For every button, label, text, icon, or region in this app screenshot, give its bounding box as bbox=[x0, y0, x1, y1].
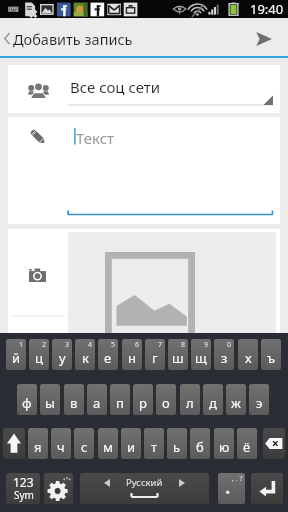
button[interactable]: ч bbox=[51, 428, 71, 459]
button[interactable]: Shift bbox=[3, 428, 25, 459]
button[interactable]: я bbox=[28, 428, 48, 459]
button[interactable]: щ bbox=[191, 339, 211, 370]
button[interactable]: Period bbox=[218, 473, 245, 504]
button[interactable]: й bbox=[6, 339, 26, 370]
staticText: 6 bbox=[135, 340, 140, 350]
button[interactable]: а bbox=[87, 384, 107, 415]
staticText: ш bbox=[172, 349, 184, 367]
button[interactable]: ь bbox=[167, 428, 187, 459]
staticText: 7 bbox=[158, 340, 163, 350]
button[interactable]: е bbox=[98, 339, 118, 370]
button[interactable]: ф bbox=[17, 384, 37, 415]
staticText: Текст bbox=[76, 128, 115, 148]
staticText: 19:40 bbox=[250, 0, 284, 18]
staticText: Все соц сети bbox=[70, 77, 161, 97]
button[interactable]: с bbox=[74, 428, 94, 459]
staticText: Sym bbox=[14, 488, 34, 502]
staticText: и bbox=[127, 438, 136, 456]
staticText: 2 bbox=[42, 340, 47, 350]
staticText: о bbox=[162, 394, 170, 412]
button[interactable]: Send bbox=[238, 18, 288, 58]
button[interactable]: т bbox=[144, 428, 164, 459]
staticText: , . ? bbox=[232, 474, 243, 484]
staticText: ъ bbox=[267, 349, 276, 367]
button[interactable]: н bbox=[122, 339, 142, 370]
button[interactable]: м bbox=[98, 428, 118, 459]
button[interactable]: и bbox=[121, 428, 141, 459]
button[interactable]: п bbox=[110, 384, 130, 415]
button[interactable]: Back bbox=[0, 18, 160, 58]
button[interactable]: г bbox=[145, 339, 165, 370]
other: Back bbox=[4, 33, 10, 44]
staticText: н bbox=[128, 349, 136, 367]
staticText: т bbox=[151, 438, 158, 456]
staticText: 5 bbox=[111, 340, 116, 350]
staticText: Русский bbox=[126, 476, 163, 489]
button[interactable]: л bbox=[180, 384, 200, 415]
staticText: Добавить запись bbox=[13, 29, 133, 49]
button[interactable]: к bbox=[75, 339, 95, 370]
staticText: я bbox=[34, 438, 42, 456]
staticText: ь bbox=[173, 438, 181, 456]
button[interactable]: х bbox=[238, 339, 258, 370]
staticText: щ bbox=[195, 349, 207, 367]
staticText: 8 bbox=[181, 340, 186, 350]
button[interactable]: ъ bbox=[261, 339, 281, 370]
button[interactable]: Settings bbox=[44, 473, 73, 504]
button[interactable]: ё bbox=[237, 428, 257, 459]
staticText: б bbox=[196, 438, 204, 456]
button[interactable]: 123 bbox=[6, 473, 40, 504]
staticText: д bbox=[209, 394, 217, 412]
button[interactable]: о bbox=[156, 384, 176, 415]
staticText: ч bbox=[57, 438, 65, 456]
button[interactable]: ж bbox=[226, 384, 246, 415]
button[interactable]: ю bbox=[214, 428, 234, 459]
staticText: г bbox=[152, 349, 158, 367]
button[interactable]: в bbox=[64, 384, 84, 415]
staticText: 1 bbox=[19, 340, 24, 350]
staticText: й bbox=[12, 349, 21, 367]
staticText: ж bbox=[231, 394, 241, 412]
staticText: ы bbox=[45, 394, 55, 412]
button[interactable]: Enter bbox=[251, 473, 283, 504]
button[interactable]: э bbox=[249, 384, 269, 415]
button[interactable]: Add photo bbox=[29, 268, 46, 282]
staticText: к bbox=[82, 349, 89, 367]
staticText: з bbox=[221, 349, 228, 367]
staticText: п bbox=[116, 394, 124, 412]
button[interactable]: ы bbox=[40, 384, 60, 415]
staticText: а bbox=[93, 394, 101, 412]
button[interactable]: у bbox=[52, 339, 72, 370]
staticText: е bbox=[104, 349, 112, 367]
staticText: 9 bbox=[204, 340, 209, 350]
staticText: 3 bbox=[65, 340, 70, 350]
staticText: 123 bbox=[13, 474, 34, 490]
staticText: 0 bbox=[227, 340, 232, 350]
staticText: 4 bbox=[88, 340, 93, 350]
staticText: л bbox=[186, 394, 194, 412]
staticText: с bbox=[81, 438, 88, 456]
button[interactable]: б bbox=[190, 428, 210, 459]
staticText: в bbox=[70, 394, 78, 412]
staticText: ц bbox=[35, 349, 43, 367]
button[interactable]: ц bbox=[29, 339, 49, 370]
button[interactable]: д bbox=[203, 384, 223, 415]
button[interactable]: ш bbox=[168, 339, 188, 370]
button[interactable]: Backspace bbox=[263, 428, 285, 459]
button[interactable]: Space bbox=[80, 473, 209, 504]
button[interactable]: Все соц сети bbox=[60, 65, 280, 113]
staticText: м bbox=[103, 438, 113, 456]
staticText: х bbox=[245, 349, 252, 367]
button[interactable]: р bbox=[133, 384, 153, 415]
button[interactable]: Текст bbox=[60, 117, 280, 224]
button[interactable] bbox=[68, 232, 276, 339]
staticText: р bbox=[139, 394, 147, 412]
staticText: ф bbox=[22, 394, 32, 412]
button[interactable]: з bbox=[214, 339, 234, 370]
staticText: ё bbox=[243, 438, 251, 456]
staticText: э bbox=[256, 394, 263, 412]
staticText: ю bbox=[219, 438, 230, 456]
staticText: у bbox=[59, 349, 66, 367]
